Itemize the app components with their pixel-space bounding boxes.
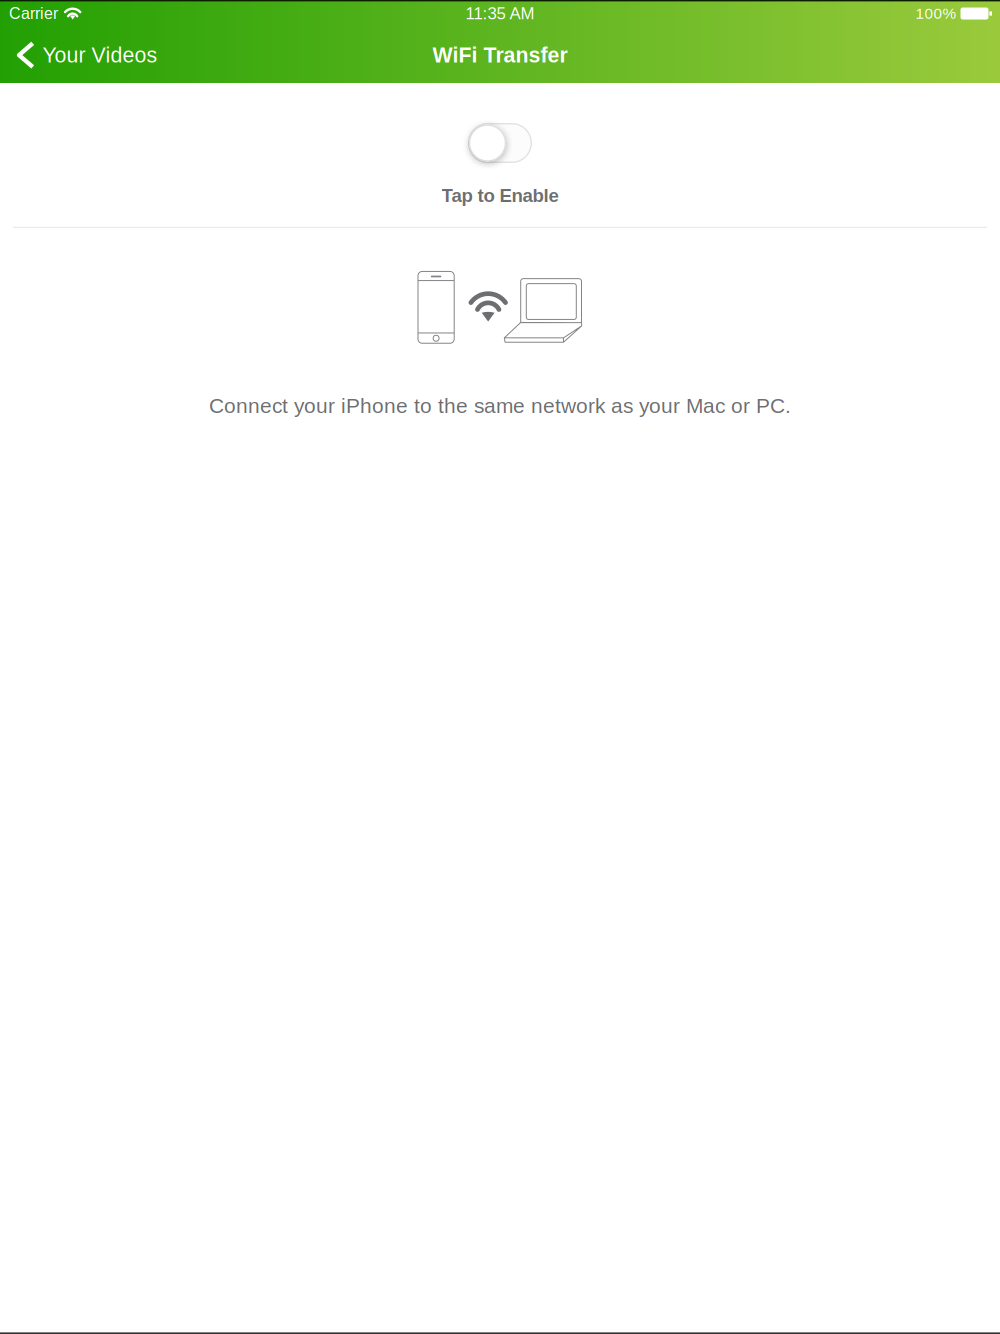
staticText: Connect your iPhone to the same network … <box>209 394 791 417</box>
staticText: WiFi Transfer <box>432 43 567 67</box>
button[interactable]: Back to Your Videos <box>0 27 171 83</box>
staticText: Tap to Enable <box>441 185 558 206</box>
staticText: Your Videos <box>42 43 157 67</box>
staticText: 100% <box>915 5 956 22</box>
staticText: Carrier <box>9 5 58 22</box>
staticText: 11:35 AM <box>465 4 534 23</box>
button[interactable]: Tap to Enable WiFi Transfer <box>0 83 1000 227</box>
